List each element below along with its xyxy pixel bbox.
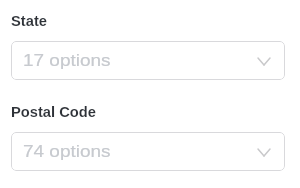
staticText: 17 options <box>23 52 285 70</box>
staticText: 74 options <box>23 143 285 161</box>
button[interactable]: 74 options <box>11 132 285 171</box>
staticText: State <box>11 13 48 29</box>
staticText: Postal Code <box>11 104 96 120</box>
button[interactable]: 17 options <box>11 41 285 80</box>
other: Expand State options <box>258 58 270 65</box>
other: Expand Postal Code options <box>258 149 270 156</box>
